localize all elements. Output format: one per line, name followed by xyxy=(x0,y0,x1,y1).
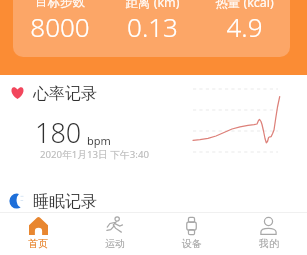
button[interactable]: 首页 xyxy=(0,213,76,250)
button[interactable]: 睡眠记录 xyxy=(0,188,307,214)
staticText: 8000 xyxy=(30,9,90,44)
button[interactable]: 心率记录 xyxy=(0,80,307,168)
staticText: 热量 (kcal) xyxy=(215,0,274,11)
staticText: 180 xyxy=(35,114,82,151)
staticText: 设备 xyxy=(182,237,202,250)
staticText: 首页 xyxy=(28,237,48,250)
staticText: 4.9 xyxy=(226,9,263,44)
staticText: bpm xyxy=(87,133,111,148)
staticText: 距离 (km) xyxy=(125,0,180,11)
staticText: 2020年1月13日 下午3:40 xyxy=(40,148,149,161)
staticText: 心率记录 xyxy=(33,84,97,104)
staticText: 目标步数 xyxy=(35,0,85,10)
staticText: 0.13 xyxy=(127,9,178,44)
button[interactable]: 运动 xyxy=(76,213,153,250)
button[interactable]: 设备 xyxy=(153,213,230,250)
staticText: 我的 xyxy=(259,237,279,250)
button[interactable]: 我的 xyxy=(230,213,307,250)
staticText: 运动 xyxy=(105,237,125,250)
staticText: 睡眠记录 xyxy=(33,192,97,212)
